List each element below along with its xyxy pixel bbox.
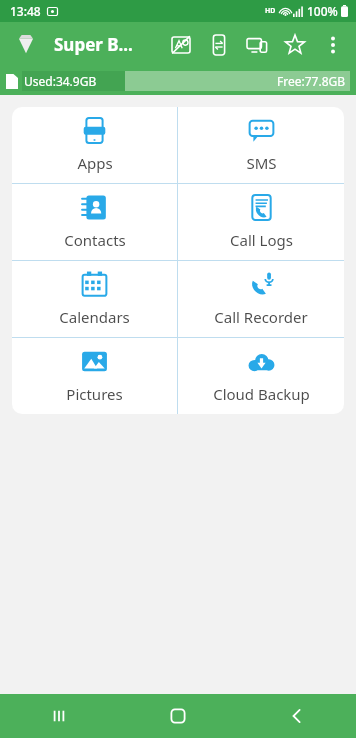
- button[interactable]: Transfer: [200, 26, 238, 64]
- button[interactable]: Pictures: [12, 338, 177, 414]
- button[interactable]: SMS: [178, 107, 344, 183]
- button[interactable]: App logo: [8, 27, 44, 63]
- staticText: Super B...: [54, 33, 133, 56]
- button[interactable]: Contacts: [12, 184, 177, 260]
- button[interactable]: Back: [237, 694, 356, 738]
- button[interactable]: Used:34.9GB: [0, 67, 356, 95]
- staticText: Used:34.9GB: [24, 73, 97, 89]
- button[interactable]: Call Logs: [178, 184, 344, 260]
- staticText: HD: [265, 6, 276, 16]
- staticText: Apps: [77, 153, 113, 173]
- button[interactable]: Calendars: [12, 261, 177, 337]
- button[interactable]: Favorite: [276, 26, 314, 64]
- staticText: Call Recorder: [214, 307, 308, 327]
- button[interactable]: More options: [314, 26, 352, 64]
- button[interactable]: Translate: [162, 26, 200, 64]
- staticText: Free:77.8GB: [277, 73, 346, 89]
- staticText: SMS: [246, 153, 277, 173]
- button[interactable]: Recent apps: [0, 694, 118, 738]
- staticText: Pictures: [66, 384, 123, 404]
- staticText: Calendars: [59, 307, 130, 327]
- staticText: Contacts: [64, 230, 126, 250]
- button[interactable]: Home: [118, 694, 237, 738]
- staticText: Call Logs: [230, 230, 293, 250]
- button[interactable]: Call Recorder: [178, 261, 344, 337]
- button[interactable]: Cloud Backup: [178, 338, 344, 414]
- button[interactable]: Cast to screen: [238, 26, 276, 64]
- staticText: Cloud Backup: [213, 384, 310, 404]
- staticText: 100%: [307, 3, 338, 19]
- button[interactable]: Apps: [12, 107, 177, 183]
- staticText: 13:48: [10, 3, 41, 19]
